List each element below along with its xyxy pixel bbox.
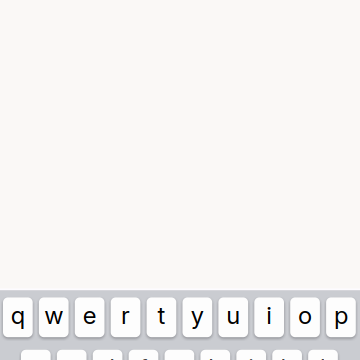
button[interactable]: p: [326, 297, 356, 337]
staticText: k: [281, 353, 294, 360]
button[interactable]: d: [93, 350, 122, 360]
button[interactable]: y: [182, 297, 212, 337]
staticText: h: [208, 353, 222, 360]
button[interactable]: q: [3, 297, 33, 337]
button[interactable]: g: [164, 350, 194, 360]
button[interactable]: h: [200, 350, 230, 360]
staticText: i: [266, 301, 272, 330]
staticText: j: [248, 353, 254, 360]
button[interactable]: r: [111, 297, 140, 337]
staticText: p: [334, 301, 348, 330]
button[interactable]: k: [272, 350, 302, 360]
button[interactable]: w: [39, 297, 69, 337]
button[interactable]: i: [254, 297, 284, 337]
staticText: o: [298, 301, 312, 330]
staticText: w: [44, 301, 63, 330]
button[interactable]: e: [75, 297, 104, 337]
staticText: u: [226, 301, 240, 330]
button[interactable]: s: [57, 350, 86, 360]
staticText: f: [139, 353, 148, 360]
staticText: r: [121, 301, 130, 330]
staticText: l: [320, 353, 326, 360]
button[interactable]: j: [236, 350, 266, 360]
button[interactable]: f: [129, 350, 158, 360]
staticText: y: [191, 301, 204, 330]
button[interactable]: t: [147, 297, 176, 337]
button[interactable]: a: [21, 350, 51, 360]
button[interactable]: o: [290, 297, 320, 337]
button[interactable]: l: [308, 350, 338, 360]
staticText: q: [11, 301, 25, 330]
staticText: t: [157, 301, 165, 330]
staticText: e: [83, 301, 97, 330]
button[interactable]: u: [218, 297, 248, 337]
staticText: d: [101, 353, 115, 360]
